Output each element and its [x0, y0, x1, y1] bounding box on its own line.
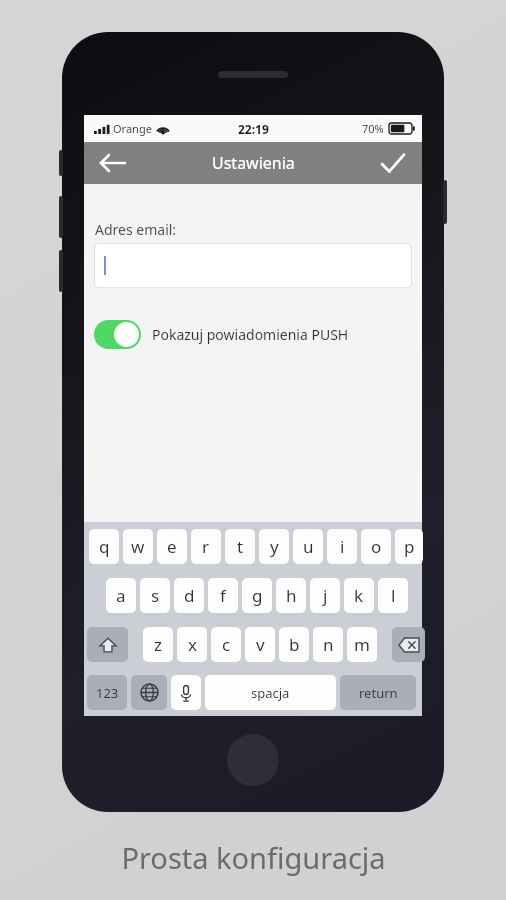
staticText: z [154, 633, 162, 656]
button[interactable]: c [211, 627, 241, 662]
staticText: 70% [362, 121, 384, 136]
staticText: n [323, 633, 334, 656]
button[interactable]: i [327, 529, 357, 564]
staticText: x [188, 633, 197, 656]
button[interactable]: u [293, 529, 323, 564]
staticText: c [222, 633, 231, 656]
staticText: 22:19 [238, 121, 269, 137]
button[interactable]: p [395, 529, 423, 564]
staticText: Ustawienia [212, 152, 295, 174]
button[interactable]: b [279, 627, 309, 662]
staticText: f [220, 584, 226, 607]
button[interactable]: j [310, 578, 340, 613]
button[interactable]: s [140, 578, 170, 613]
button[interactable]: spacja [205, 675, 336, 710]
button[interactable]: t [225, 529, 255, 564]
staticText: v [256, 633, 265, 656]
button[interactable]: w [123, 529, 153, 564]
button[interactable]: Home [227, 734, 279, 786]
staticText: p [404, 535, 415, 558]
staticText: return [359, 684, 398, 702]
staticText: 123 [96, 684, 119, 702]
button[interactable] [94, 243, 412, 288]
button[interactable]: k [344, 578, 374, 613]
button[interactable]: y [259, 529, 289, 564]
button[interactable]: Numbers [87, 675, 127, 710]
staticText: t [237, 535, 244, 558]
button[interactable]: g [242, 578, 272, 613]
staticText: Orange [113, 121, 152, 136]
staticText: m [354, 633, 370, 656]
staticText: q [99, 535, 110, 558]
staticText: g [252, 584, 263, 607]
button[interactable]: x [177, 627, 207, 662]
button[interactable]: v [245, 627, 275, 662]
staticText: l [391, 584, 396, 607]
staticText: k [354, 584, 364, 607]
button[interactable]: r [191, 529, 221, 564]
button[interactable]: Shift [87, 627, 128, 662]
button[interactable]: Language [131, 675, 167, 710]
button[interactable]: h [276, 578, 306, 613]
button[interactable]: m [347, 627, 377, 662]
staticText: a [116, 584, 126, 607]
button[interactable]: Save [370, 146, 416, 180]
button[interactable]: d [174, 578, 204, 613]
button[interactable]: e [157, 529, 187, 564]
staticText: e [167, 535, 177, 558]
staticText: Prosta konfiguracja [121, 838, 386, 877]
staticText: i [340, 535, 345, 558]
button[interactable]: z [143, 627, 173, 662]
staticText: Pokazuj powiadomienia PUSH [152, 325, 349, 344]
staticText: Adres email: [95, 220, 177, 239]
button[interactable]: return [340, 675, 416, 710]
staticText: h [286, 584, 297, 607]
staticText: o [371, 535, 382, 558]
button[interactable]: Pokazuj powiadomienia PUSH [94, 316, 349, 352]
button[interactable]: f [208, 578, 238, 613]
staticText: s [151, 584, 160, 607]
button[interactable]: q [89, 529, 119, 564]
button[interactable]: n [313, 627, 343, 662]
button[interactable]: a [106, 578, 136, 613]
button[interactable]: Dictate [171, 675, 201, 710]
staticText: b [289, 633, 300, 656]
staticText: w [131, 535, 145, 558]
staticText: y [270, 535, 279, 558]
staticText: r [202, 535, 210, 558]
staticText: u [303, 535, 314, 558]
button[interactable]: Backspace [392, 627, 425, 662]
staticText: j [323, 584, 328, 607]
button[interactable]: l [378, 578, 408, 613]
staticText: d [184, 584, 195, 607]
button[interactable]: Back [90, 146, 136, 180]
button[interactable]: o [361, 529, 391, 564]
staticText: spacja [251, 684, 290, 702]
